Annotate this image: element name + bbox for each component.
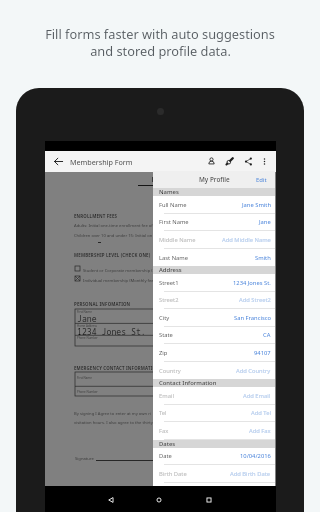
staticText: Add Country [236, 367, 271, 375]
staticText: Street2 [159, 296, 179, 304]
staticText: First Name [77, 376, 92, 380]
button[interactable]: State [153, 326, 275, 344]
button[interactable]: Tel [153, 404, 275, 422]
button[interactable]: More options [256, 151, 272, 172]
staticText: Phone Number [77, 336, 98, 340]
staticText: PERSONAL INFOMATION [74, 301, 131, 307]
staticText: 94107 [254, 349, 271, 357]
button[interactable]: Annotate [221, 151, 237, 172]
staticText: 10/04/2016 [240, 452, 271, 460]
staticText: Fax [159, 427, 169, 435]
button[interactable]: Home [149, 487, 169, 512]
staticText: Add Fax [249, 427, 271, 435]
staticText: Children over 10 and under 15: Initial o… [74, 233, 153, 239]
staticText: and stored profile data. [90, 42, 231, 59]
staticText: Adults: Initial one-time enrollment fee … [74, 223, 153, 229]
staticText: CA [263, 331, 271, 339]
staticText: Individual membership (Monthly fee [83, 278, 154, 284]
staticText: Signature [75, 456, 94, 462]
staticText: Fill forms faster with auto suggestions [45, 25, 275, 42]
staticText: Jane Smith [242, 201, 271, 209]
button[interactable]: Email [153, 387, 275, 405]
button[interactable]: Last Name [153, 249, 275, 267]
button[interactable]: Date [153, 447, 275, 465]
staticText: Jane [77, 313, 97, 324]
button[interactable]: Country [153, 362, 275, 380]
staticText: Phone Number [77, 390, 98, 394]
staticText: State [159, 331, 173, 339]
staticText: Add Birth Date [230, 470, 271, 478]
staticText: Membership Form [70, 157, 133, 167]
button[interactable]: Back [50, 151, 66, 172]
staticText: Edit [256, 176, 267, 184]
staticText: City [159, 314, 170, 322]
staticText: Address [159, 266, 182, 274]
staticText: Birth Date [159, 470, 187, 478]
button[interactable]: Middle Name [153, 231, 275, 249]
staticText: EMERGENCY CONTACT INFORMATIO [74, 365, 157, 371]
staticText: Add Email [243, 392, 271, 400]
button[interactable]: Birth Date [153, 465, 275, 483]
button[interactable]: Share [240, 151, 256, 172]
button[interactable]: Recent apps [199, 487, 219, 512]
button[interactable]: Street2 [153, 291, 275, 309]
staticText: Add Street2 [239, 296, 271, 304]
staticText: Dates [159, 440, 176, 448]
staticText: San Francisco [234, 314, 271, 322]
staticText: My Profile [199, 175, 230, 184]
button[interactable]: Back [101, 487, 121, 512]
staticText: Country [159, 367, 181, 375]
button[interactable]: Full Name [153, 196, 275, 214]
staticText: Names [159, 188, 179, 196]
staticText: Full Name [159, 201, 187, 209]
staticText: Jane [259, 218, 271, 226]
button[interactable]: First Name [153, 213, 275, 231]
button[interactable]: Street1 [153, 274, 275, 292]
staticText: 1234 Jones St. [77, 326, 146, 337]
staticText: visitation hours. I also agree to the th… [74, 420, 153, 426]
staticText: Street1 [159, 279, 179, 287]
staticText: MEMBERSHIP LEVEL (CHECK ONE) [74, 252, 151, 258]
staticText: Add Tel [251, 409, 271, 417]
staticText: ENROLLMENT FEES [74, 213, 118, 219]
button[interactable]: Account [203, 151, 219, 172]
staticText: Smith [255, 254, 271, 262]
staticText: Zip [159, 349, 168, 357]
staticText: First Name [159, 218, 189, 226]
button[interactable]: City [153, 309, 275, 327]
staticText: Middle Name [159, 236, 196, 244]
staticText: Student or Corporate membership ( [83, 268, 153, 274]
button[interactable]: Zip [153, 344, 275, 362]
staticText: First Name [77, 310, 92, 314]
staticText: Add Middle Name [222, 236, 271, 244]
staticText: Email [159, 392, 174, 400]
staticText: Tel [159, 409, 167, 417]
staticText: By signing I Agree to enter at my own ri [74, 411, 151, 417]
button[interactable]: Edit [256, 176, 267, 184]
staticText: Date [159, 452, 172, 460]
staticText: Contact Information [159, 379, 217, 387]
button[interactable]: Fax [153, 422, 275, 440]
staticText: Home Address [77, 324, 97, 328]
staticText: Last Name [159, 254, 189, 262]
staticText: 1234 Jones St. [233, 279, 271, 287]
